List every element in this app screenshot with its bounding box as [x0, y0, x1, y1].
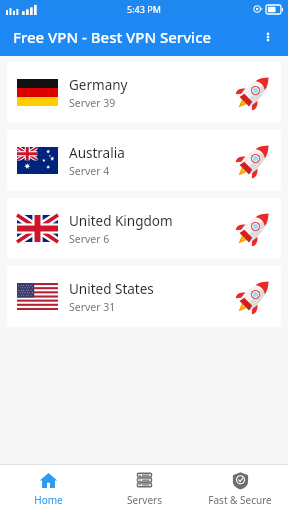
staticText: Home — [34, 493, 63, 507]
staticText: 5:43 PM — [127, 3, 161, 15]
button[interactable]: Home — [0, 466, 96, 512]
staticText: Server 39 — [69, 96, 116, 110]
staticText: United States — [69, 280, 154, 298]
button[interactable]: Germany — [7, 62, 281, 123]
staticText: Australia — [69, 144, 125, 162]
staticText: Server 6 — [69, 232, 110, 246]
staticText: Server 31 — [69, 300, 116, 314]
button[interactable]: United States — [7, 266, 281, 327]
staticText: Fast & Secure — [208, 493, 272, 507]
staticText: Server 4 — [69, 164, 110, 178]
button[interactable]: Australia — [7, 130, 281, 191]
staticText: United Kingdom — [69, 212, 173, 230]
staticText: Free VPN - Best VPN Service — [13, 27, 212, 47]
staticText: Germany — [69, 76, 128, 94]
button[interactable]: More options — [252, 21, 284, 53]
button[interactable]: Fast & Secure — [192, 466, 288, 512]
button[interactable]: United Kingdom — [7, 198, 281, 259]
button[interactable]: Servers — [96, 466, 192, 512]
staticText: Servers — [127, 493, 162, 507]
